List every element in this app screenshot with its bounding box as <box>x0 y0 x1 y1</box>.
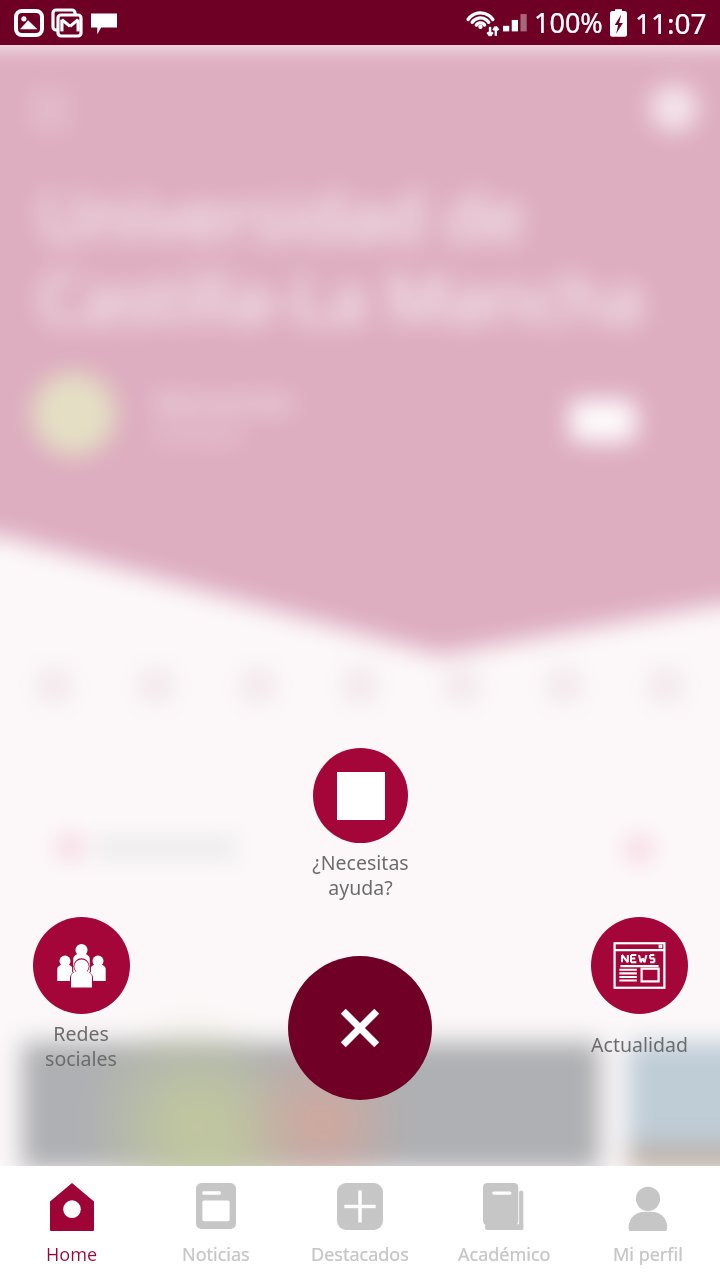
button[interactable]: Actualidad <box>564 912 714 1070</box>
staticText: Noticias <box>182 1242 250 1267</box>
button[interactable]: Noticias <box>144 1166 288 1280</box>
staticText: Castilla-La Mancha <box>38 250 644 344</box>
staticText: Home <box>46 1242 98 1267</box>
button[interactable]: Mi perfil <box>576 1166 720 1280</box>
staticText: Bienvenido <box>156 384 293 419</box>
button[interactable]: Cerrar menú <box>288 956 432 1100</box>
staticText: Universidad de <box>38 168 526 262</box>
button[interactable]: Redes sociales <box>6 912 156 1070</box>
staticText: ¿Necesitas ayuda? <box>312 849 409 901</box>
staticText: Mi perfil <box>613 1242 683 1267</box>
staticText: Redes sociales <box>45 1020 117 1072</box>
staticText: Destacados <box>311 1242 409 1267</box>
staticText: 100% <box>534 4 603 41</box>
staticText: 11:07 <box>635 4 707 42</box>
button[interactable]: ¿Necesitas ayuda? <box>285 742 435 900</box>
button[interactable]: Destacados <box>288 1166 432 1280</box>
button[interactable]: Académico <box>432 1166 576 1280</box>
button[interactable]: Home <box>0 1166 144 1280</box>
staticText: Actualidad <box>591 1031 688 1058</box>
staticText: Académico <box>458 1242 551 1267</box>
